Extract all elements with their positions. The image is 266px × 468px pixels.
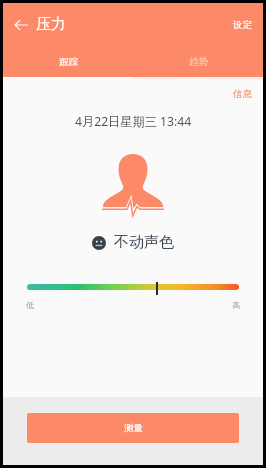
staticText: 跟踪 [59, 56, 78, 68]
button[interactable]: 设定 [233, 19, 252, 31]
staticText: 压力 [36, 15, 66, 34]
staticText: 信息 [233, 88, 252, 100]
staticText: 高 [232, 300, 240, 310]
button[interactable]: 趋势 [133, 46, 263, 77]
staticText: 4月22日星期三 13:44 [75, 113, 192, 130]
staticText: 设定 [233, 19, 252, 31]
staticText: 测量 [124, 422, 143, 434]
button[interactable]: Back [9, 13, 33, 37]
button[interactable]: 测量 [27, 413, 239, 443]
button[interactable]: 跟踪 [3, 46, 133, 77]
staticText: 趋势 [189, 56, 208, 68]
button[interactable]: 信息 [233, 88, 252, 100]
staticText: 不动声色 [114, 233, 174, 252]
staticText: 低 [26, 300, 34, 310]
